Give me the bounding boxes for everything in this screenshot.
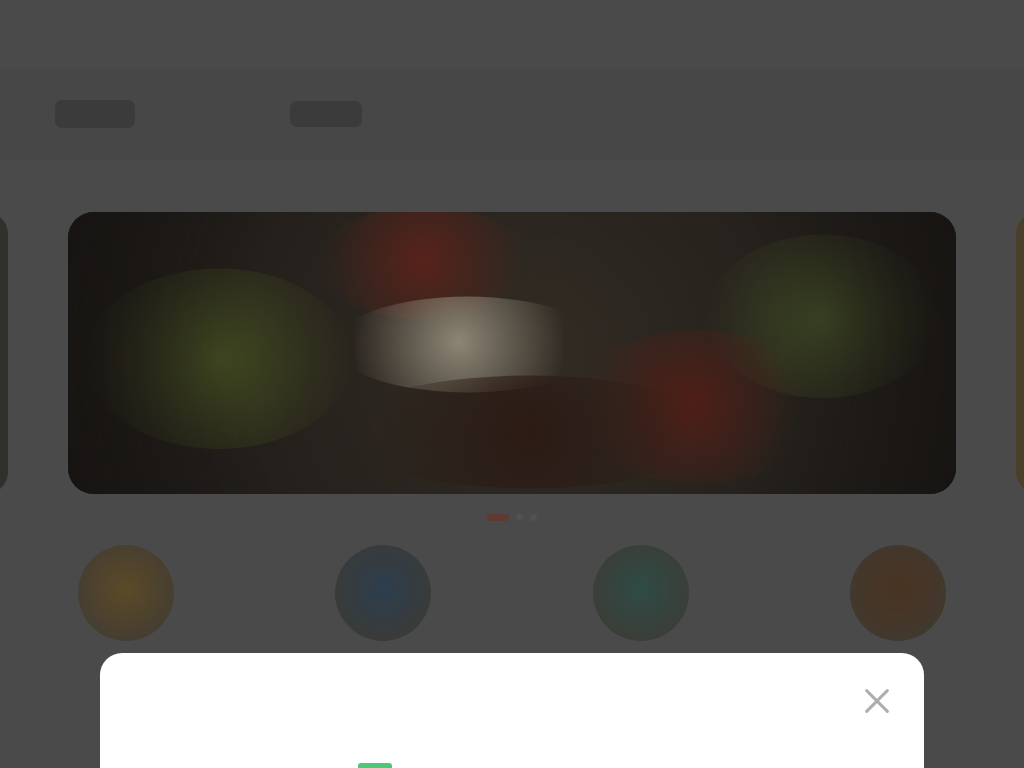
button[interactable]: Promotion banner: [68, 212, 956, 494]
button[interactable]: Category 3: [587, 539, 695, 647]
button[interactable]: Next promotion: [1016, 212, 1024, 494]
button[interactable]: Previous promotion: [0, 212, 8, 494]
button[interactable]: Category 4: [844, 539, 952, 647]
button[interactable]: Category 1: [72, 539, 180, 647]
button[interactable]: Close: [855, 679, 899, 723]
button[interactable]: Category 2: [329, 539, 437, 647]
